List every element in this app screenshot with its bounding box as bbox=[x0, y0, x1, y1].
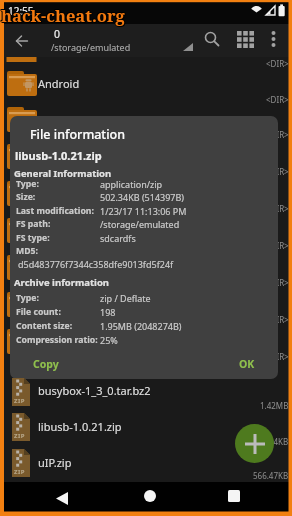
staticText: Archive information bbox=[14, 276, 110, 289]
button[interactable] bbox=[8, 28, 34, 54]
staticText: 1/23/17 11:13:06 PM bbox=[100, 205, 187, 217]
staticText: Type: bbox=[16, 178, 39, 190]
staticText: hack-cheat.org bbox=[1, 3, 125, 25]
staticText: ZIP bbox=[14, 468, 26, 476]
staticText: 1.95MB (2048274B) bbox=[100, 320, 182, 332]
staticText: /storage/emulated bbox=[51, 41, 131, 53]
staticText: General Information bbox=[14, 167, 112, 180]
staticText: <DIR> bbox=[266, 240, 289, 250]
staticText: ZIP bbox=[14, 397, 26, 405]
staticText: hack-cheat.org bbox=[0, 3, 124, 25]
staticText: libusb-1.0.21.zip bbox=[15, 148, 102, 163]
staticText: <DIR> bbox=[266, 203, 289, 213]
staticText: /storage/emulated bbox=[100, 218, 180, 230]
staticText: Copy bbox=[33, 357, 59, 371]
staticText: 1.42MB bbox=[260, 400, 289, 410]
staticText: application/zip bbox=[100, 178, 163, 190]
button[interactable] bbox=[235, 424, 274, 463]
button[interactable] bbox=[262, 27, 284, 51]
staticText: Compression ratio: bbox=[16, 334, 98, 346]
staticText: FS path: bbox=[16, 218, 51, 230]
staticText: <DIR> bbox=[266, 166, 289, 176]
button[interactable] bbox=[233, 27, 257, 51]
staticText: d5d483776f7344c358dfe9013fd5f24f bbox=[18, 258, 174, 270]
staticText: 502.34KB (514397B) bbox=[100, 191, 185, 203]
button[interactable] bbox=[200, 27, 224, 51]
button[interactable] bbox=[136, 482, 164, 510]
button[interactable] bbox=[0, 452, 292, 482]
staticText: 25% bbox=[100, 334, 118, 346]
staticText: zip / Deflate bbox=[100, 292, 151, 304]
staticText: 566.47KB bbox=[253, 470, 289, 480]
staticText: <DIR> bbox=[266, 351, 289, 361]
staticText: hack-cheat.org bbox=[0, 4, 124, 26]
staticText: <DIR> bbox=[266, 314, 289, 324]
staticText: 12:55 bbox=[8, 4, 34, 18]
staticText: sdcardfs bbox=[100, 232, 136, 244]
staticText: FS type: bbox=[16, 232, 50, 244]
staticText: libusb-1.0.21.zip bbox=[38, 419, 122, 434]
staticText: Type: bbox=[16, 292, 39, 304]
staticText: Last modification: bbox=[16, 205, 94, 217]
staticText: File count: bbox=[16, 306, 61, 318]
staticText: busybox-1_3_0.tar.bz2 bbox=[38, 383, 151, 398]
button[interactable] bbox=[220, 482, 248, 510]
staticText: ZIP bbox=[14, 432, 26, 440]
staticText: 0 bbox=[54, 27, 61, 41]
staticText: 502.34KB bbox=[253, 436, 289, 446]
staticText: <DIR> bbox=[266, 129, 289, 139]
staticText: <DIR> bbox=[266, 94, 289, 104]
button[interactable]: Copy bbox=[18, 353, 74, 375]
staticText: hack-cheat.org bbox=[1, 4, 125, 26]
staticText: hack-cheat.org bbox=[2, 4, 126, 26]
staticText: Android bbox=[38, 76, 80, 91]
button[interactable]: OK bbox=[227, 353, 267, 375]
staticText: hack-cheat.org bbox=[2, 5, 126, 27]
staticText: 198 bbox=[100, 306, 116, 318]
staticText: Content size: bbox=[16, 320, 73, 332]
staticText: <DIR> bbox=[266, 58, 289, 68]
staticText: <DIR> bbox=[266, 277, 289, 287]
staticText: File information bbox=[30, 126, 126, 143]
staticText: OK bbox=[239, 357, 255, 371]
button[interactable] bbox=[0, 65, 292, 102]
staticText: hack-cheat.org bbox=[1, 5, 125, 27]
staticText: MD5: bbox=[16, 245, 38, 257]
button[interactable] bbox=[48, 484, 76, 512]
button[interactable] bbox=[0, 380, 292, 416]
staticText: Size: bbox=[16, 191, 36, 203]
button[interactable] bbox=[0, 416, 292, 452]
staticText: uIP.zip bbox=[38, 455, 72, 470]
